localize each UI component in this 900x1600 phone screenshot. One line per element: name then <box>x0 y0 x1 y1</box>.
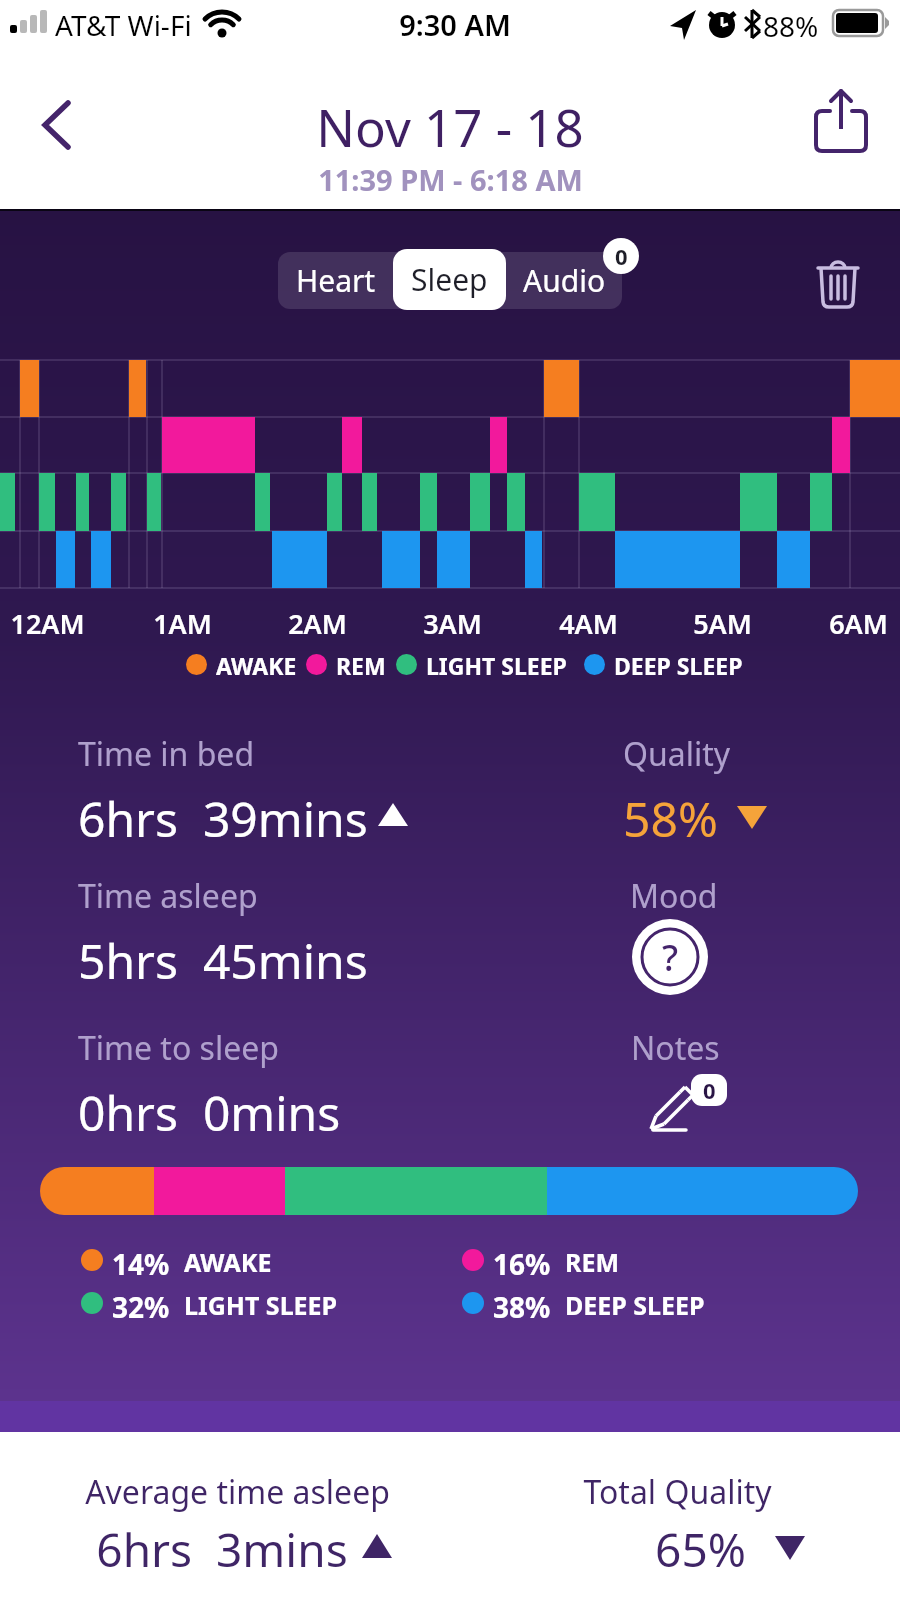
staticText: 2AM <box>288 605 347 642</box>
staticText: REM <box>336 650 386 678</box>
staticText: Nov 17 - 18 <box>316 92 584 161</box>
staticText: Time asleep <box>78 874 258 918</box>
staticText: 1AM <box>153 605 212 642</box>
staticText: 38% <box>493 1288 551 1318</box>
staticText: 9:30 AM <box>399 5 511 44</box>
staticText: Total Quality <box>583 1470 772 1514</box>
button[interactable]: Sleep <box>393 249 506 310</box>
staticText: DEEP SLEEP <box>614 650 743 678</box>
staticText: 4AM <box>559 605 618 642</box>
staticText: 0hrs 0mins <box>78 1080 341 1145</box>
staticText: AT&T Wi-Fi <box>55 6 192 44</box>
staticText: AWAKE <box>216 650 297 678</box>
staticText: 32% <box>112 1288 170 1318</box>
staticText: 11:39 PM - 6:18 AM <box>318 160 583 199</box>
button[interactable]: 0 <box>640 1072 740 1142</box>
button[interactable] <box>810 252 866 316</box>
staticText: Time in bed <box>78 732 255 776</box>
staticText: Heart <box>296 260 376 301</box>
staticText: Mood <box>630 874 718 918</box>
staticText: Notes <box>631 1026 720 1070</box>
button[interactable] <box>808 85 878 165</box>
staticText: Average time asleep <box>85 1470 390 1514</box>
staticText: 6AM <box>829 605 888 642</box>
staticText: REM <box>565 1245 619 1275</box>
staticText: 16% <box>493 1245 551 1275</box>
staticText: 6hrs 39mins <box>78 786 368 851</box>
button[interactable]: Heart <box>278 252 393 309</box>
staticText: ? <box>662 933 679 982</box>
staticText: 14% <box>112 1245 170 1275</box>
staticText: 5AM <box>693 605 752 642</box>
staticText: DEEP SLEEP <box>565 1288 705 1318</box>
staticText: 65% <box>655 1518 746 1581</box>
staticText: Time to sleep <box>78 1026 279 1070</box>
staticText: 3AM <box>423 605 482 642</box>
staticText: 0 <box>703 1075 716 1105</box>
button[interactable] <box>25 90 95 160</box>
staticText: 0 <box>615 241 628 271</box>
button[interactable]: Audio <box>506 252 622 309</box>
staticText: 58% <box>623 786 718 851</box>
staticText: 5hrs 45mins <box>78 928 368 993</box>
staticText: 6hrs 3mins <box>96 1518 348 1581</box>
staticText: Audio <box>523 260 606 301</box>
staticText: LIGHT SLEEP <box>426 650 567 678</box>
staticText: 88% <box>763 7 819 45</box>
staticText: 12AM <box>10 605 85 642</box>
staticText: AWAKE <box>184 1245 272 1275</box>
staticText: Quality <box>623 732 731 776</box>
staticText: LIGHT SLEEP <box>184 1288 338 1318</box>
button[interactable]: ? <box>632 919 708 995</box>
staticText: Sleep <box>411 259 488 300</box>
